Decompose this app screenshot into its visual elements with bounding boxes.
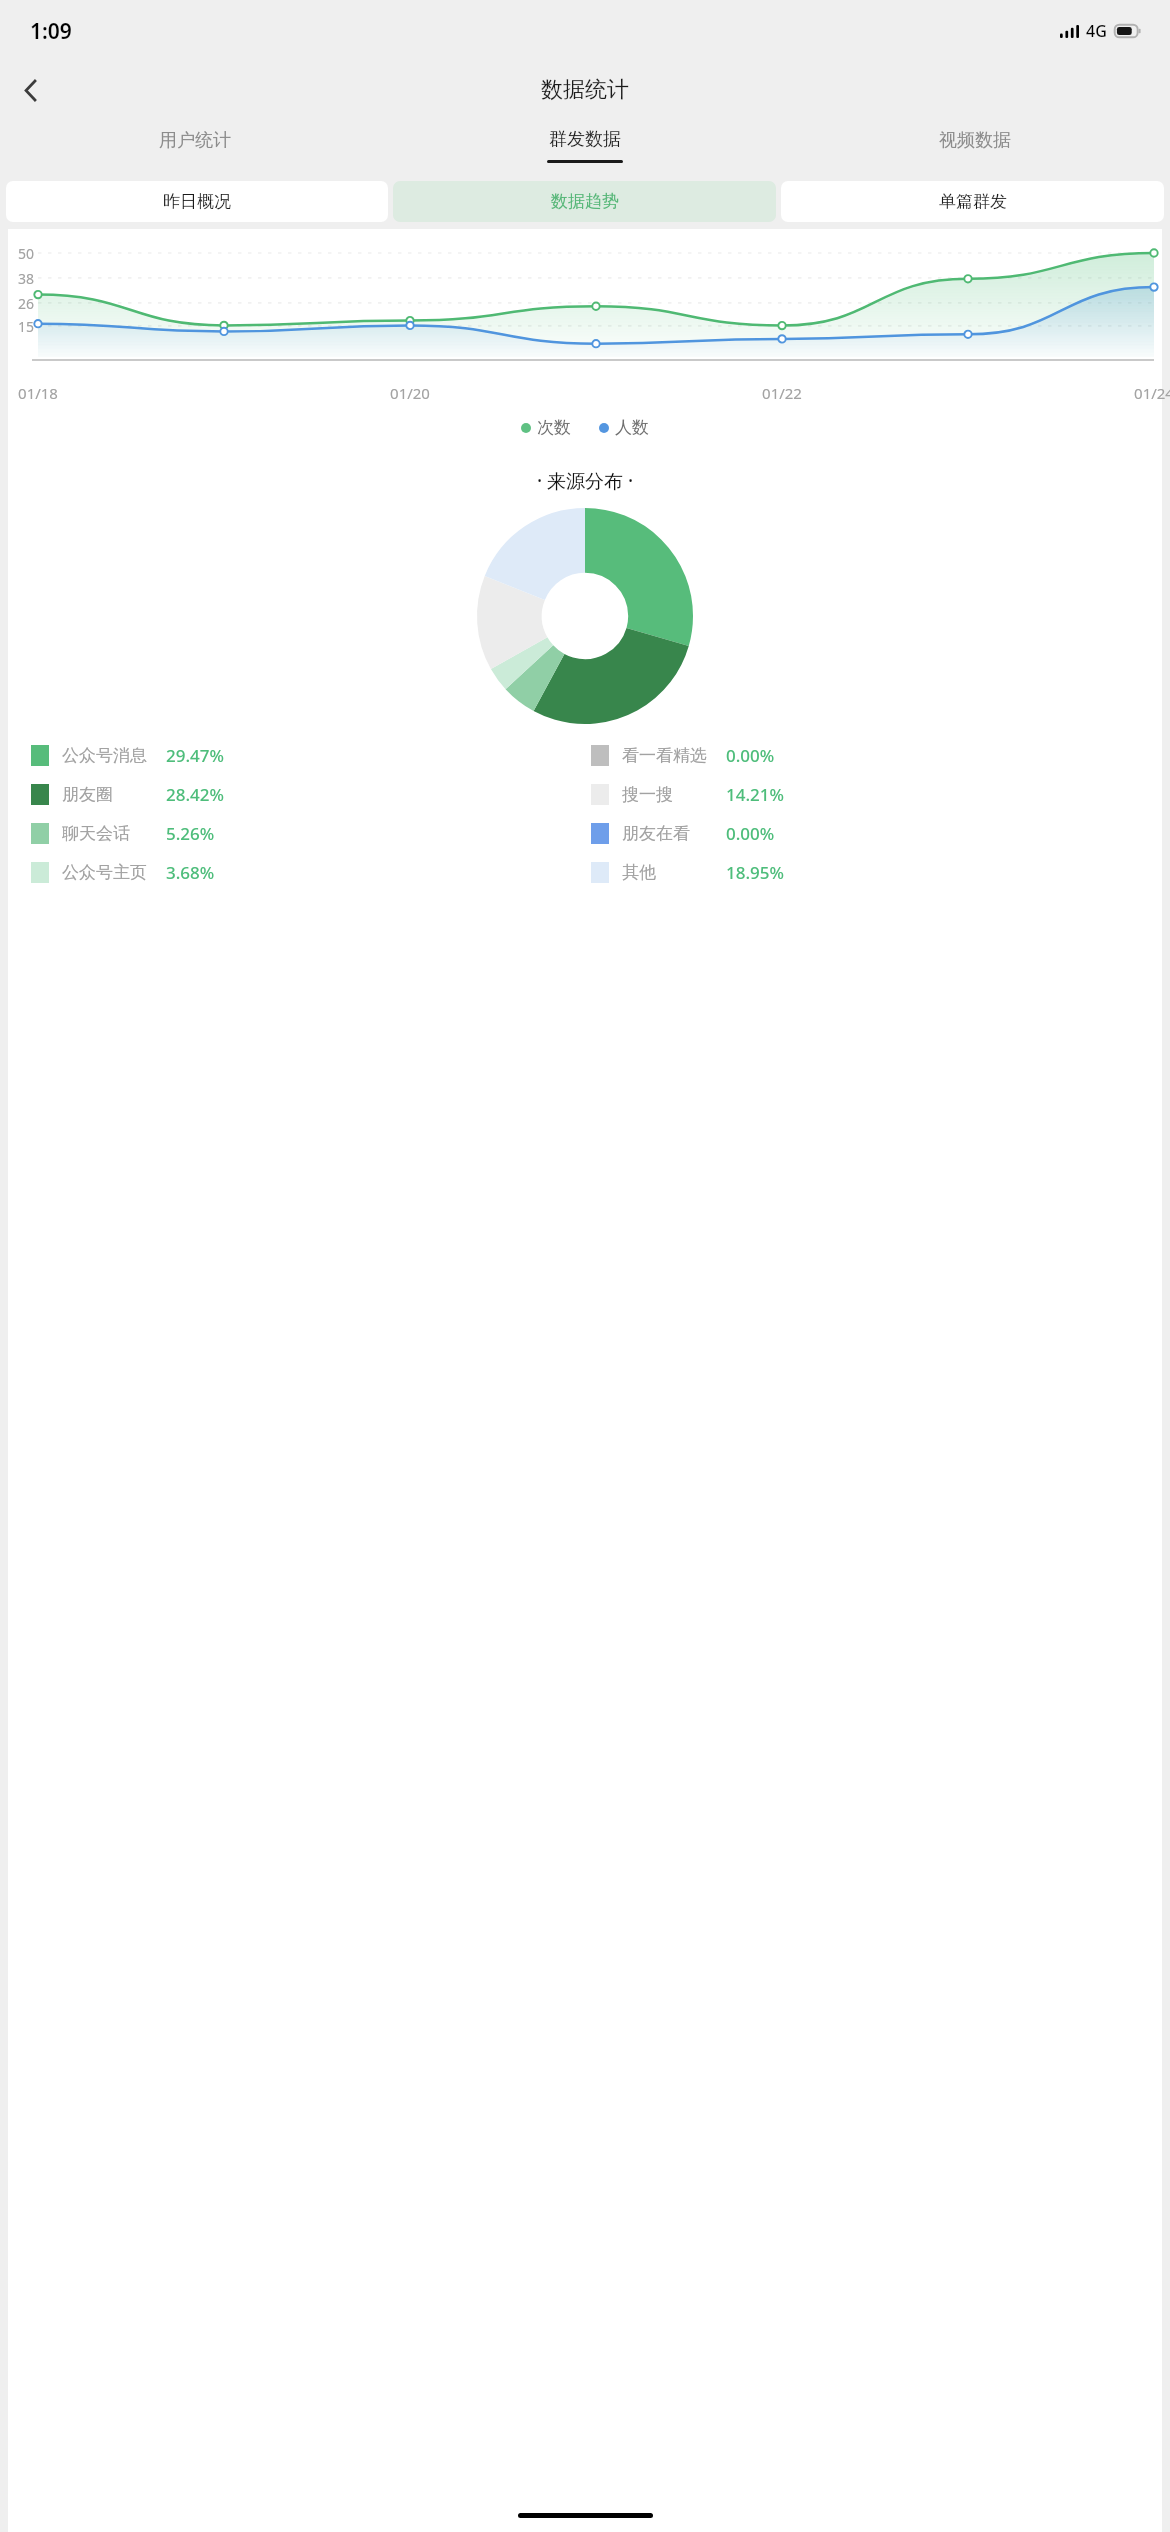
staticText: 38 xyxy=(10,269,34,288)
staticText: 用户统计 xyxy=(159,129,231,152)
button[interactable]: 昨日概况 xyxy=(6,181,388,222)
staticText: 4G xyxy=(1086,20,1107,42)
staticText: 搜一搜 xyxy=(622,784,726,805)
staticText: 1:09 xyxy=(30,17,72,46)
staticText: 昨日概况 xyxy=(163,191,231,212)
staticText: 朋友圈 xyxy=(62,784,166,805)
button[interactable]: 公众号主页 xyxy=(31,853,591,892)
button[interactable]: 朋友圈 xyxy=(31,775,591,814)
staticText: 14.21% xyxy=(726,783,785,806)
button[interactable]: 用户统计 xyxy=(0,118,390,172)
staticText: 01/24 xyxy=(1130,383,1170,403)
staticText: 数据统计 xyxy=(541,76,629,104)
button[interactable]: 公众号消息 xyxy=(31,736,591,775)
staticText: 0.00% xyxy=(726,744,775,767)
staticText: 单篇群发 xyxy=(939,191,1007,212)
staticText: 28.42% xyxy=(166,783,225,806)
button[interactable]: 次数 xyxy=(521,417,571,438)
staticText: 50 xyxy=(10,244,34,263)
button[interactable]: 人数 xyxy=(599,417,649,438)
staticText: 人数 xyxy=(615,417,649,438)
staticText: 01/20 xyxy=(386,383,434,403)
staticText: 数据趋势 xyxy=(551,191,619,212)
button[interactable]: 搜一搜 xyxy=(591,775,1152,814)
staticText: 视频数据 xyxy=(939,129,1011,152)
staticText: 公众号主页 xyxy=(62,862,166,883)
button[interactable]: 群发数据 xyxy=(390,118,780,172)
staticText: 其他 xyxy=(622,862,726,883)
staticText: 次数 xyxy=(537,417,571,438)
staticText: 看一看精选 xyxy=(622,745,726,766)
button[interactable]: 单篇群发 xyxy=(781,181,1164,222)
button[interactable]: 聊天会话 xyxy=(31,814,591,853)
staticText: 公众号消息 xyxy=(62,745,166,766)
staticText: 3.68% xyxy=(166,861,215,884)
button[interactable]: 视频数据 xyxy=(780,118,1170,172)
staticText: 5.26% xyxy=(166,822,215,845)
staticText: 01/18 xyxy=(14,383,62,403)
staticText: 29.47% xyxy=(166,744,225,767)
staticText: 26 xyxy=(10,294,34,313)
staticText: 群发数据 xyxy=(549,128,621,151)
staticText: 18.95% xyxy=(726,861,785,884)
staticText: 聊天会话 xyxy=(62,823,166,844)
staticText: · 来源分布 · xyxy=(8,468,1162,494)
button[interactable]: 看一看精选 xyxy=(591,736,1152,775)
staticText: 朋友在看 xyxy=(622,823,726,844)
staticText: 15 xyxy=(10,317,34,336)
staticText: 0.00% xyxy=(726,822,775,845)
button[interactable]: 其他 xyxy=(591,853,1152,892)
button[interactable]: 数据趋势 xyxy=(393,181,776,222)
button[interactable]: Back xyxy=(6,66,54,114)
staticText: 01/22 xyxy=(758,383,806,403)
button[interactable]: 朋友在看 xyxy=(591,814,1152,853)
